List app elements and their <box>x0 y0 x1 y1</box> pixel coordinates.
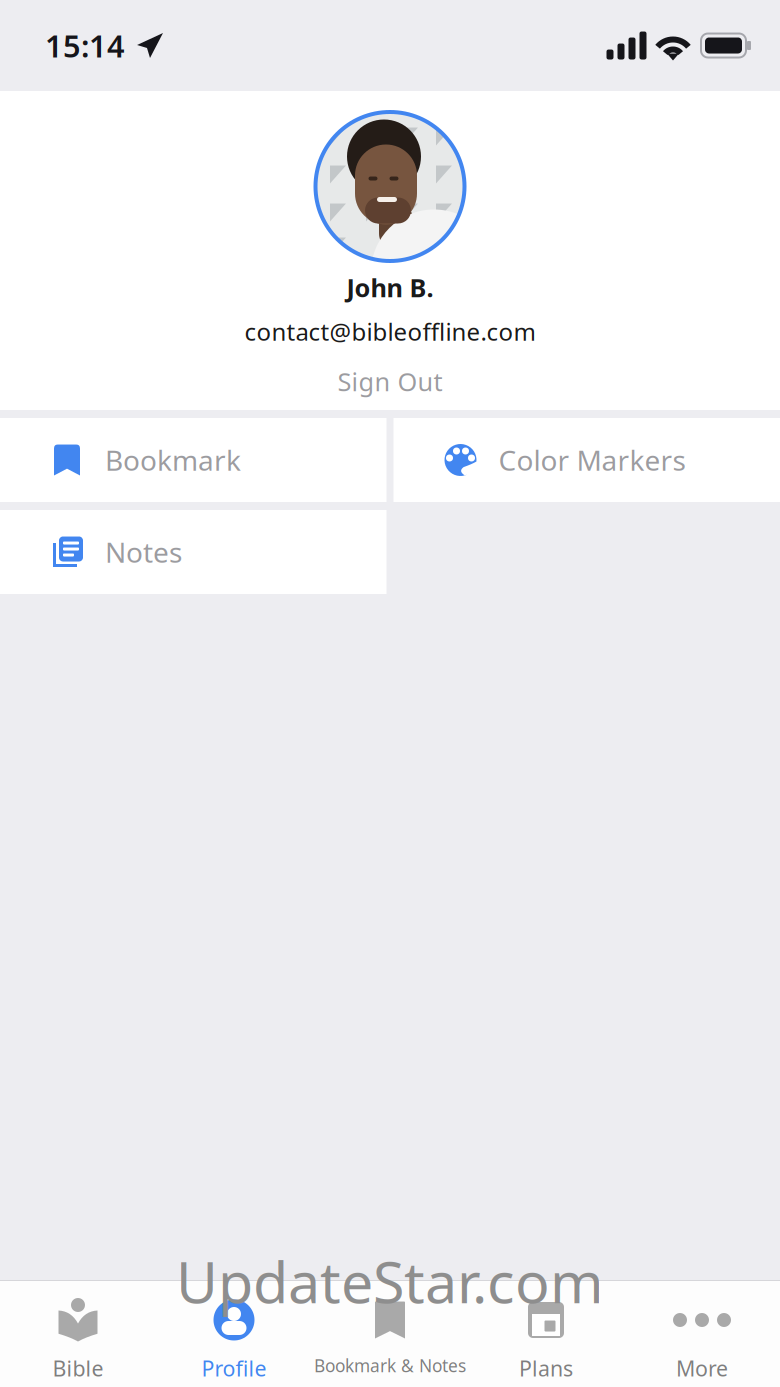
staticText: John B. <box>346 271 433 304</box>
staticText: Profile <box>201 1354 266 1382</box>
staticText: Bookmark <box>105 441 241 479</box>
button[interactable]: Sign Out <box>0 353 780 410</box>
staticText: 15:14 <box>45 25 125 66</box>
button[interactable]: Plans <box>468 1281 624 1387</box>
button[interactable]: Profile <box>156 1281 312 1387</box>
staticText: More <box>676 1354 728 1382</box>
button[interactable]: Bookmark & Notes <box>312 1281 468 1387</box>
staticText: contact@bibleoffline.com <box>244 316 535 347</box>
staticText: Sign Out <box>337 365 442 398</box>
button[interactable]: More <box>624 1281 780 1387</box>
staticText: Bible <box>52 1354 103 1382</box>
staticText: Notes <box>105 533 182 571</box>
staticText: UpdateStar.com <box>176 1243 604 1319</box>
staticText: Bookmark & Notes <box>314 1354 466 1377</box>
button[interactable]: Color Markers <box>393 418 780 502</box>
button[interactable]: Notes <box>0 510 386 594</box>
button[interactable]: Bible <box>0 1281 156 1387</box>
staticText: Color Markers <box>498 441 685 479</box>
staticText: Plans <box>519 1354 573 1382</box>
button[interactable]: Bookmark <box>0 418 386 502</box>
